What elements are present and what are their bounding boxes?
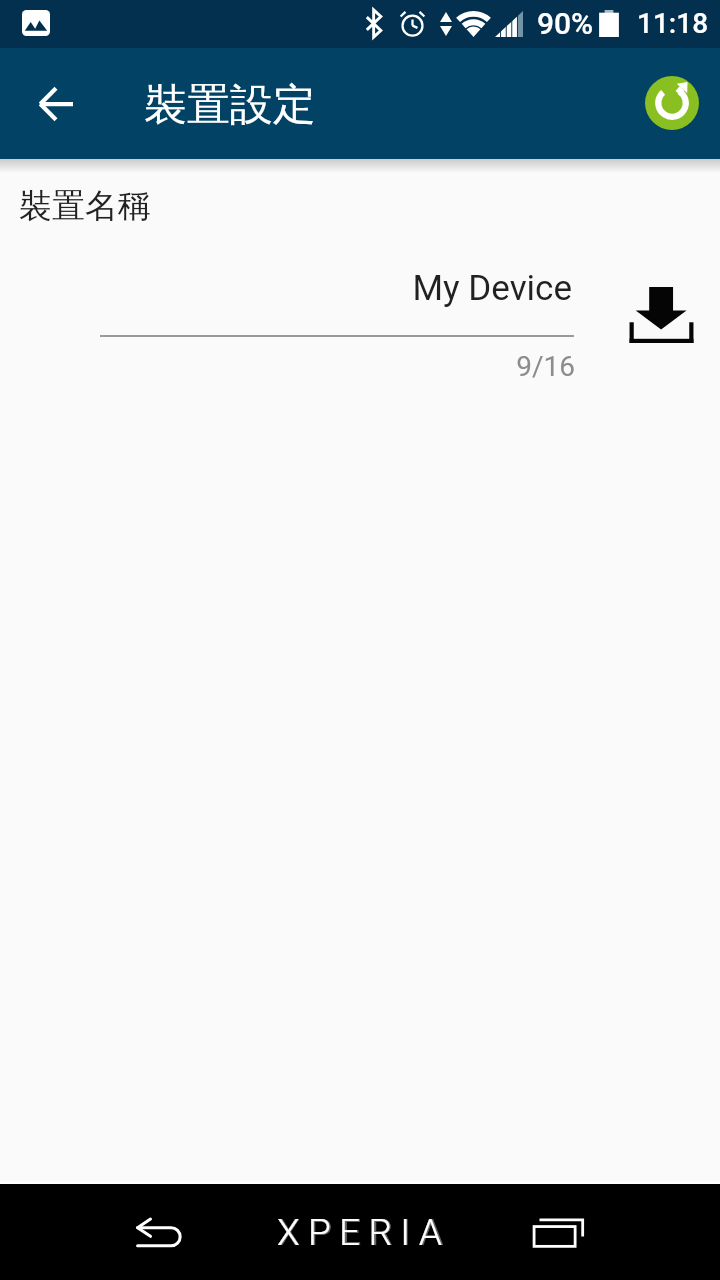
button[interactable]: Back bbox=[110, 1184, 210, 1280]
staticText: My Device bbox=[100, 268, 572, 309]
button[interactable]: Download bbox=[619, 273, 703, 357]
staticText: 9/16 bbox=[100, 350, 575, 383]
staticText: 90% bbox=[537, 6, 594, 41]
button[interactable]: Home bbox=[264, 1184, 464, 1280]
staticText: 裝置設定 bbox=[144, 78, 316, 132]
staticText: XPERIA bbox=[277, 1211, 451, 1254]
button[interactable]: Refresh bbox=[637, 68, 706, 137]
staticText: 裝置名稱 bbox=[19, 185, 151, 227]
button[interactable]: Recents bbox=[510, 1184, 610, 1280]
button[interactable]: My Device bbox=[100, 262, 575, 344]
staticText: 11:18 bbox=[637, 7, 709, 40]
staticText: XPERIA bbox=[277, 1211, 452, 1254]
button[interactable]: Back bbox=[24, 72, 88, 136]
